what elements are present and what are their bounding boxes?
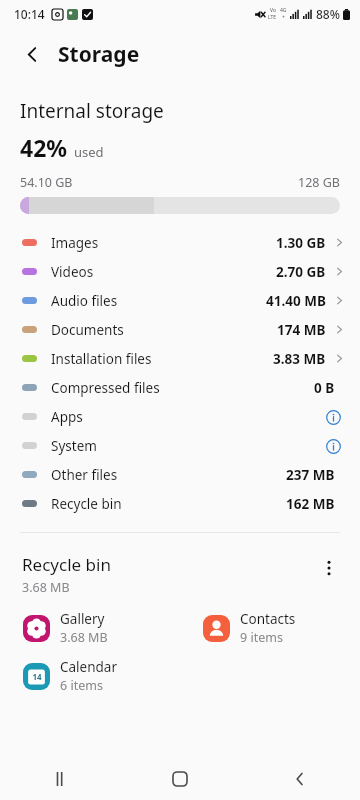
button[interactable]: Info about System [322,435,344,457]
button[interactable]: Contacts [180,610,360,646]
staticText: Other files [51,466,118,484]
staticText: 4G [280,7,287,14]
button[interactable]: System [0,431,360,460]
button[interactable]: Audio files [0,286,360,315]
staticText: 0 B [314,379,335,397]
staticText: 174 MB [277,321,326,339]
staticText: Internal storage [20,98,164,124]
staticText: Videos [51,263,94,281]
button[interactable]: Videos [0,257,360,286]
staticText: 6 items [60,677,103,694]
staticText: 237 MB [286,466,335,484]
button[interactable]: Recent apps [0,758,120,800]
staticText: Contacts [240,610,296,628]
button[interactable]: Back [240,758,360,800]
staticText: 54.10 GB [20,174,73,191]
staticText: Compressed files [51,379,160,397]
staticText: Storage [58,40,140,69]
button[interactable]: Other files [0,460,360,489]
staticText: Recycle bin [22,553,111,576]
button[interactable]: Apps [0,402,360,431]
staticText: 3.68 MB [22,579,70,596]
button[interactable]: Home [120,758,240,800]
staticText: 3.68 MB [60,629,108,646]
button[interactable]: 14 [0,658,180,694]
staticText: + [282,14,285,21]
button[interactable]: Compressed files [0,373,360,402]
staticText: 162 MB [286,495,335,513]
staticText: Gallery [60,610,105,628]
staticText: 3.83 MB [273,350,326,368]
staticText: System [51,437,97,455]
button[interactable]: Info about Apps [322,406,344,428]
staticText: Installation files [51,350,152,368]
staticText: 14 [32,671,42,682]
staticText: Images [51,234,99,252]
staticText: 9 items [240,629,283,646]
button[interactable]: Gallery [0,610,180,646]
button[interactable]: More options [314,553,344,583]
staticText: used [74,143,104,161]
button[interactable]: Back [14,36,50,72]
button[interactable]: Recycle bin [0,489,360,518]
staticText: 88% [316,6,340,22]
staticText: 1.30 GB [276,234,326,252]
staticText: Calendar [60,658,117,676]
button[interactable]: Installation files [0,344,360,373]
staticText: Recycle bin [51,495,122,513]
staticText: 2.70 GB [276,263,326,281]
staticText: Apps [51,408,83,426]
button[interactable]: Documents [0,315,360,344]
staticText: 42% [20,132,68,163]
staticText: Audio files [51,292,118,310]
staticText: 41.40 MB [266,292,326,310]
staticText: Documents [51,321,124,339]
button[interactable]: Images [0,228,360,257]
staticText: 10:14 [14,6,45,22]
staticText: Vo [270,7,276,14]
staticText: LTE [268,14,277,21]
staticText: 128 GB [298,174,340,191]
